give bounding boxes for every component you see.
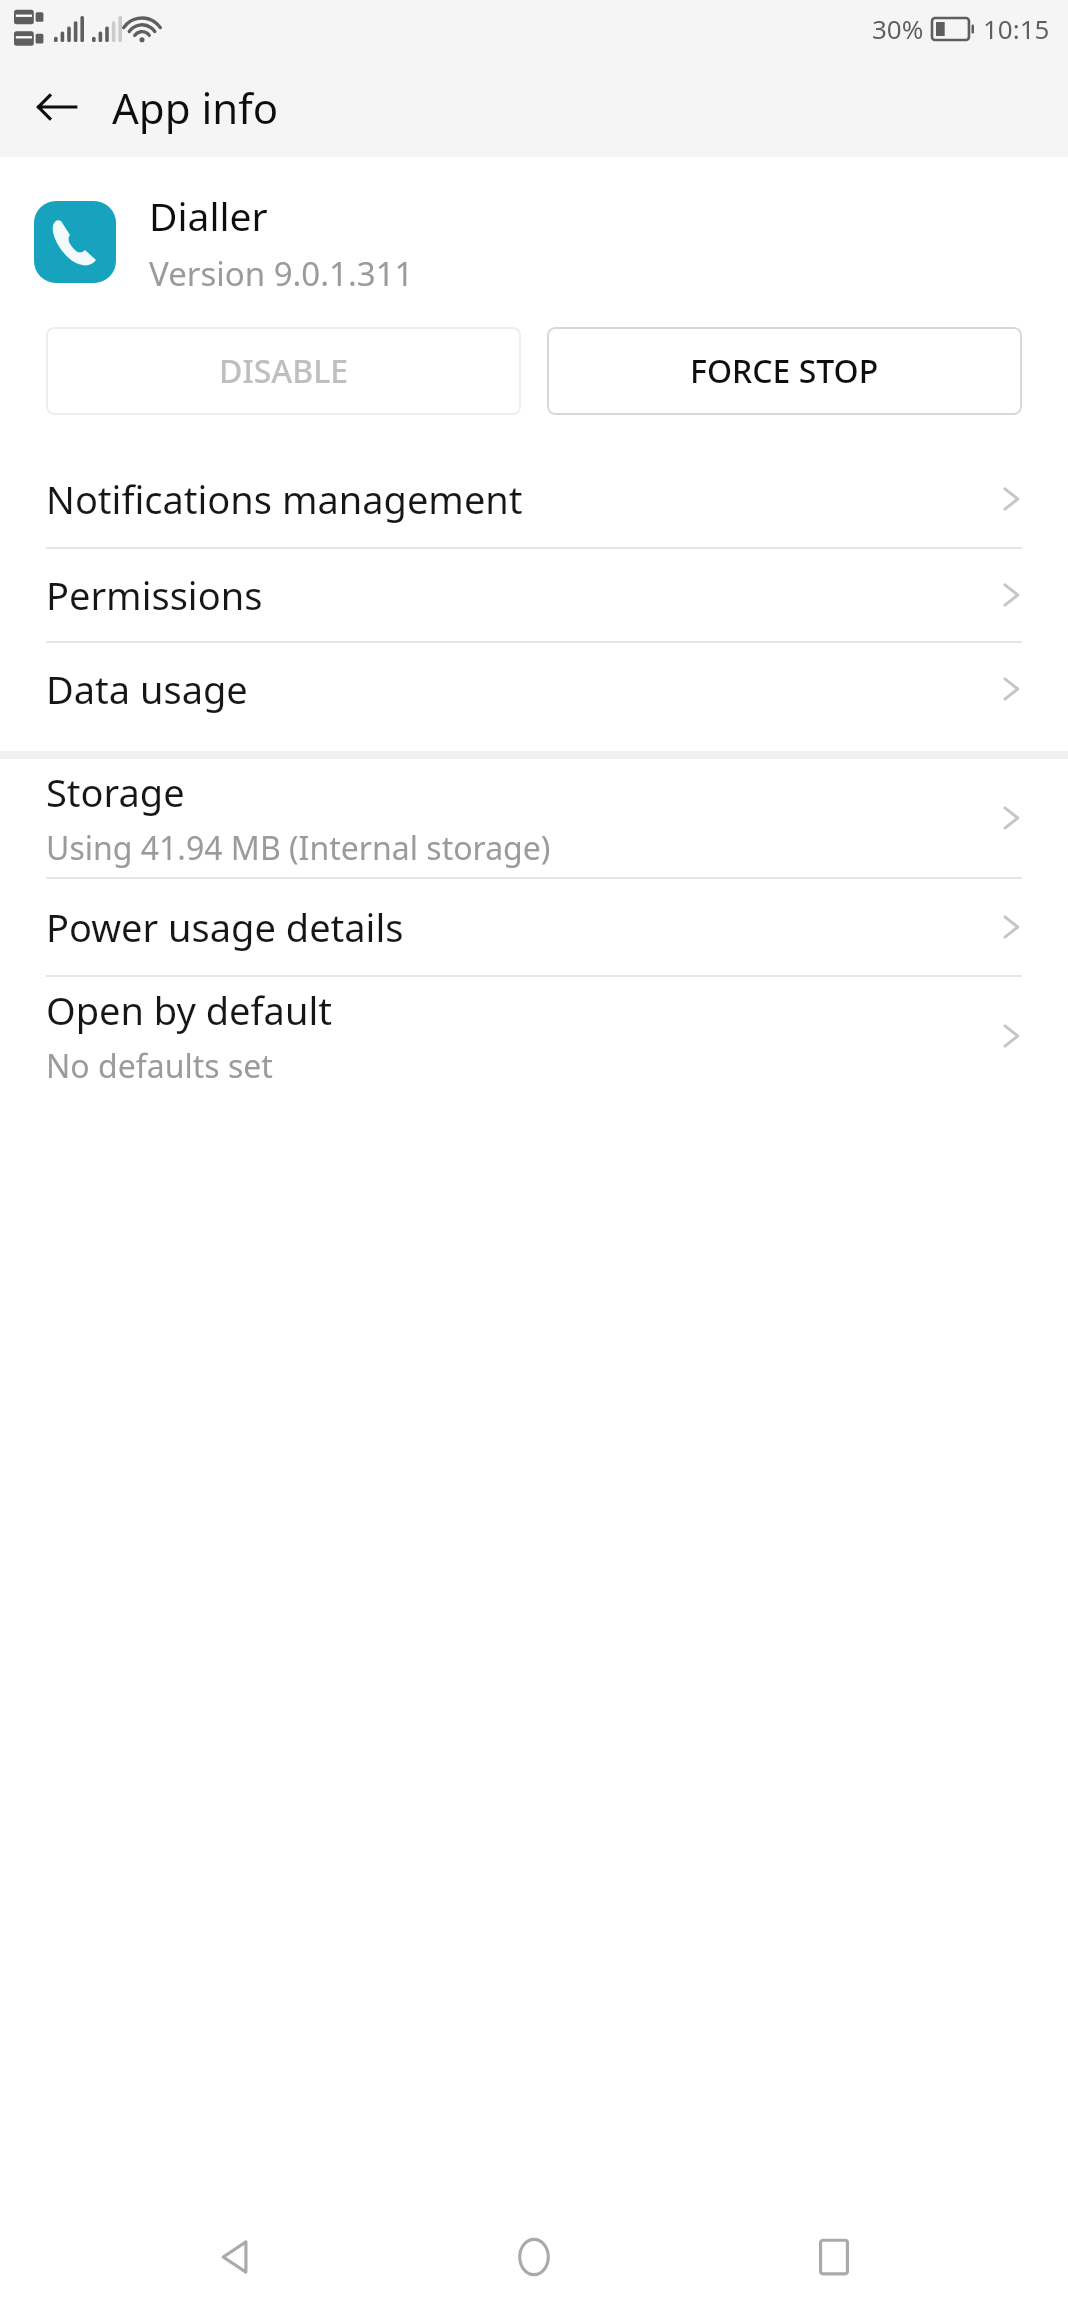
staticText: Open by default bbox=[46, 984, 332, 1036]
staticText: DISABLE bbox=[219, 349, 349, 393]
button[interactable]: DISABLE bbox=[46, 327, 521, 415]
button[interactable]: Recent apps bbox=[769, 2200, 899, 2314]
staticText: Dialler bbox=[149, 189, 268, 242]
staticText: FORCE STOP bbox=[690, 349, 879, 393]
button[interactable]: Back bbox=[170, 2200, 300, 2314]
staticText: No defaults set bbox=[46, 1044, 273, 1088]
staticText: App info bbox=[112, 79, 279, 136]
staticText: Data usage bbox=[46, 663, 248, 715]
button[interactable]: Power usage details bbox=[0, 879, 1068, 975]
button[interactable]: Notifications management bbox=[0, 451, 1068, 547]
staticText: Notifications management bbox=[46, 473, 523, 525]
staticText: Permissions bbox=[46, 569, 263, 621]
staticText: Version 9.0.1.311 bbox=[149, 251, 414, 296]
button[interactable]: Open by default bbox=[0, 977, 1068, 1095]
staticText: 30% bbox=[872, 11, 924, 46]
button[interactable]: Permissions bbox=[0, 549, 1068, 641]
button[interactable]: Data usage bbox=[0, 643, 1068, 735]
button[interactable]: FORCE STOP bbox=[547, 327, 1022, 415]
staticText: Power usage details bbox=[46, 901, 404, 953]
button[interactable]: Home bbox=[469, 2200, 599, 2314]
button[interactable]: Storage bbox=[0, 759, 1068, 877]
staticText: Using 41.94 MB (Internal storage) bbox=[46, 826, 551, 870]
button[interactable]: Back bbox=[16, 67, 96, 147]
staticText: Storage bbox=[46, 766, 185, 818]
staticText: 10:15 bbox=[983, 11, 1050, 46]
